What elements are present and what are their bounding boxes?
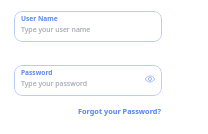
staticText: Forgot your Password? (78, 106, 161, 116)
button[interactable]: Password (14, 65, 162, 96)
button[interactable]: Forgot your Password? (77, 105, 162, 117)
staticText: Type your user name (21, 25, 91, 35)
staticText: User Name (21, 14, 58, 23)
staticText: Password (21, 68, 53, 77)
staticText: Type your password (21, 79, 87, 89)
button[interactable]: Show password (144, 73, 156, 85)
button[interactable]: User Name (14, 11, 162, 42)
